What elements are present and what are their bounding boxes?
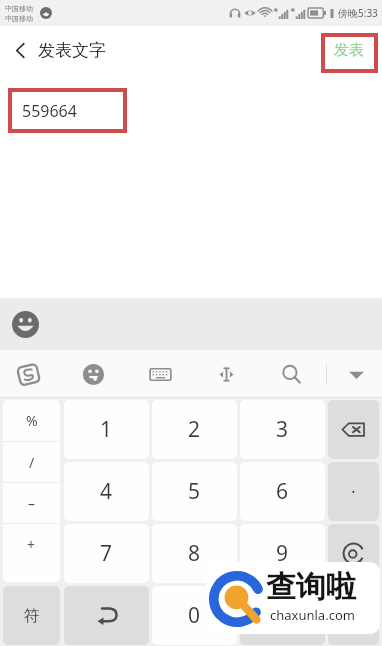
button[interactable]: 559664: [8, 88, 127, 133]
staticText: 中国移动: [5, 4, 33, 13]
button[interactable]: Enter: [328, 586, 379, 645]
button[interactable]: Emoticons: [72, 352, 114, 396]
staticText: 符: [24, 606, 40, 626]
staticText: /: [29, 453, 35, 472]
staticText: 4: [100, 477, 113, 506]
staticText: ·: [351, 480, 356, 503]
button[interactable]: 4: [64, 462, 149, 521]
staticText: 1: [100, 415, 113, 444]
button[interactable]: 5: [152, 462, 237, 521]
button[interactable]: 8: [152, 524, 237, 583]
staticText: 8: [188, 539, 201, 568]
staticText: 2: [188, 415, 201, 444]
button[interactable]: Sogou input: [7, 352, 49, 396]
button[interactable]: 符: [3, 586, 60, 645]
button[interactable]: 9: [240, 524, 325, 583]
button[interactable]: Backspace: [328, 400, 379, 459]
staticText: 查询啦: [266, 568, 356, 606]
staticText: 傍晚5:33: [338, 6, 378, 20]
button[interactable]: 发表: [328, 35, 370, 66]
staticText: 6: [276, 477, 289, 506]
button[interactable]: Symbols column: [3, 400, 60, 582]
staticText: 559664: [22, 100, 77, 122]
button[interactable]: 7: [64, 524, 149, 583]
button[interactable]: Return: [64, 586, 149, 645]
staticText: –: [28, 494, 35, 513]
button[interactable]: ·: [328, 462, 379, 521]
staticText: %: [26, 411, 38, 430]
button[interactable]: Search: [270, 352, 312, 396]
staticText: 3: [276, 415, 289, 444]
button[interactable]: [240, 586, 325, 645]
staticText: +: [27, 535, 36, 554]
staticText: 9: [276, 539, 289, 568]
staticText: chaxunla.com: [270, 606, 355, 624]
button[interactable]: 0: [152, 586, 237, 645]
button[interactable]: Hide keyboard: [335, 352, 377, 396]
button[interactable]: Back: [0, 30, 40, 70]
button[interactable]: 1: [64, 400, 149, 459]
button[interactable]: Emoji panel: [6, 305, 44, 343]
button[interactable]: 3: [240, 400, 325, 459]
button[interactable]: 6: [240, 462, 325, 521]
staticText: 5: [188, 477, 201, 506]
staticText: 发表文字: [38, 40, 106, 61]
button[interactable]: Keyboard layout: [139, 352, 181, 396]
staticText: 0: [188, 601, 201, 630]
staticText: 中国移动: [5, 14, 33, 23]
button[interactable]: At sign: [328, 524, 379, 583]
staticText: 发表: [334, 41, 364, 60]
staticText: 7: [100, 539, 113, 568]
button[interactable]: 2: [152, 400, 237, 459]
button[interactable]: Move cursor: [205, 352, 247, 396]
